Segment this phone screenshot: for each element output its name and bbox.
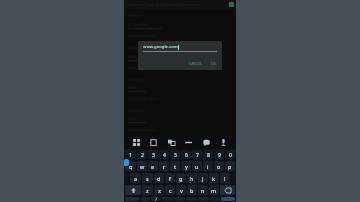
staticText: www.google.com: [143, 44, 178, 50]
button[interactable]: c: [165, 185, 175, 195]
button[interactable]: [198, 197, 209, 201]
button[interactable]: Label: [128, 54, 146, 61]
button[interactable]: h: [187, 173, 197, 183]
button[interactable]: Sticker: [201, 137, 212, 148]
button[interactable]: 7: [192, 150, 202, 159]
button[interactable]: j: [198, 173, 208, 183]
button[interactable]: Status: [229, 2, 234, 7]
button[interactable]: 4 - show full: [128, 22, 162, 29]
staticText: CANCEL: [189, 61, 202, 66]
button[interactable]: y: [181, 161, 191, 171]
staticText: Advanced Power & Password Requirements: [127, 2, 201, 7]
staticText: 7: [196, 151, 199, 158]
button[interactable]: Symbols: [125, 197, 139, 201]
staticText: 0: [229, 151, 232, 158]
button[interactable]: 5: [170, 150, 180, 159]
button[interactable]: 4: [159, 150, 169, 159]
button[interactable]: Value: [128, 85, 146, 92]
button[interactable]: [186, 197, 197, 201]
button[interactable]: CANCEL: [187, 60, 204, 67]
staticText: f: [169, 175, 171, 182]
staticText: OK: [211, 61, 216, 66]
button[interactable]: w: [137, 161, 147, 171]
staticText: l: [224, 175, 226, 182]
button[interactable]: a: [130, 173, 141, 183]
button[interactable]: .: [210, 197, 220, 201]
staticText: g: [179, 175, 183, 182]
button[interactable]: o: [214, 161, 224, 171]
staticText: 9: [218, 151, 221, 158]
button[interactable]: u: [192, 161, 202, 171]
button[interactable]: s: [142, 173, 153, 183]
staticText: v: [180, 187, 183, 194]
button[interactable]: g: [176, 173, 186, 183]
button[interactable]: z: [142, 185, 153, 195]
button[interactable]: Voice input: [218, 137, 229, 148]
button[interactable]: l: [220, 173, 230, 183]
staticText: d: [157, 175, 161, 182]
staticText: 4 - show full: [128, 22, 148, 27]
button[interactable]: 2: [137, 150, 147, 159]
staticText: r: [163, 163, 166, 170]
staticText: o: [217, 163, 221, 170]
button[interactable]: q: [125, 161, 136, 171]
button[interactable]: k: [209, 173, 219, 183]
button[interactable]: v: [176, 185, 186, 195]
button[interactable]: Translate: [166, 137, 177, 148]
button[interactable]: b: [187, 185, 197, 195]
staticText: k: [212, 175, 216, 182]
button[interactable]: 8: [203, 150, 213, 159]
staticText: Print footer value: [128, 33, 156, 38]
button[interactable]: 6: [181, 150, 191, 159]
button[interactable]: n: [198, 185, 208, 195]
staticText: 1: [129, 151, 132, 158]
staticText: 4: [163, 151, 166, 158]
staticText: 5: [174, 151, 177, 158]
button[interactable]: Theme: [183, 137, 194, 148]
button[interactable]: Version 2: [128, 45, 154, 50]
button[interactable]: 3: [148, 150, 158, 159]
button[interactable]: t: [170, 161, 180, 171]
button[interactable]: OK: [209, 60, 218, 67]
button[interactable]: r: [159, 161, 169, 171]
button[interactable]: 0: [225, 150, 235, 159]
button[interactable]: f: [165, 173, 175, 183]
button[interactable]: Print footer value: [128, 65, 168, 70]
button[interactable]: e: [148, 161, 158, 171]
button[interactable]: [162, 197, 173, 201]
staticText: /: [155, 197, 157, 201]
staticText: q: [129, 163, 133, 170]
staticText: Print footer value: [128, 65, 156, 70]
button[interactable]: Value: [128, 116, 146, 123]
button[interactable]: [174, 197, 185, 201]
button[interactable]: Backspace: [220, 185, 235, 195]
staticText: a: [134, 175, 138, 182]
button[interactable]: d: [154, 173, 164, 183]
button[interactable]: 1: [125, 150, 136, 159]
staticText: n: [201, 187, 205, 194]
button[interactable]: /: [151, 197, 161, 201]
staticText: Value: [128, 85, 137, 90]
button[interactable]: Clipboard: [148, 137, 159, 148]
staticText: u: [195, 163, 199, 170]
button[interactable]: p: [225, 161, 235, 171]
button[interactable]: 9: [214, 150, 224, 159]
button[interactable]: Go: [221, 197, 235, 201]
staticText: 2: [141, 151, 144, 158]
staticText: m: [211, 187, 217, 194]
button[interactable]: Shift: [125, 185, 141, 195]
button[interactable]: x: [154, 185, 164, 195]
button[interactable]: m: [209, 185, 219, 195]
button[interactable]: ,: [140, 197, 150, 201]
button[interactable]: i: [203, 161, 213, 171]
button[interactable]: www.google.com: [143, 44, 217, 52]
staticText: h: [190, 175, 194, 182]
button[interactable]: Apps: [131, 137, 142, 148]
